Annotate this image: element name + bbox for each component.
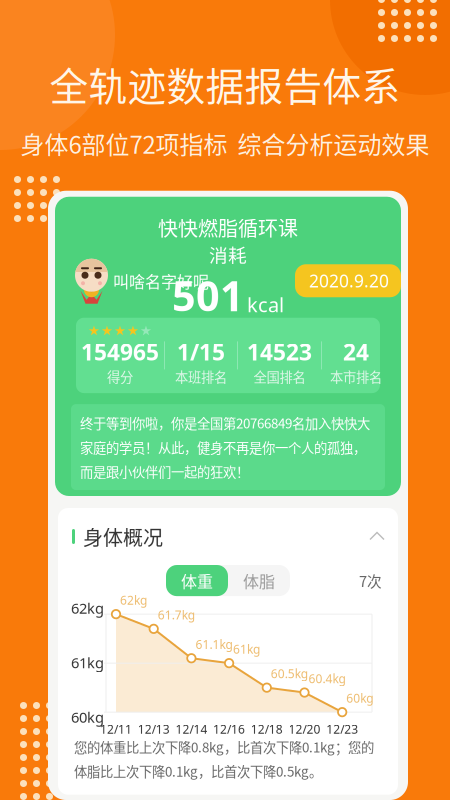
staticText: 身体6部位72项指标 综合分析运动效果 [20,126,429,161]
staticText: 501 [172,268,244,323]
staticText: 62kg [120,592,147,608]
staticText: 本班排名 [175,367,227,386]
button[interactable]: 体重 [166,565,228,596]
staticText: 154965 [81,337,159,367]
staticText: 24 [343,337,369,367]
staticText: 1/15 [177,337,225,367]
button[interactable]: Collapse section [370,532,384,540]
staticText: 12/23 [326,721,358,737]
staticText: 7次 [359,570,382,591]
staticText: 61kg [71,653,104,672]
staticText: 您的体重比上次下降0.8kg，比首次下降0.1kg；您的体脂比上次下降0.1kg… [74,737,374,781]
staticText: 60kg [346,690,373,706]
staticText: 得分 [107,367,133,386]
staticText: 12/18 [251,721,283,737]
staticText: 快快燃脂循环课 [158,213,298,242]
staticText: 60.4kg [308,671,345,686]
staticText: 61.7kg [158,607,195,623]
staticText: 62kg [71,598,104,618]
staticText: kcal [247,291,284,318]
staticText: ★ [88,323,100,338]
button[interactable]: 2020.9.20 [295,264,401,297]
staticText: 60kg [71,707,104,727]
staticText: 2020.9.20 [309,269,389,292]
staticText: 61.1kg [195,636,232,652]
staticText: ★ [114,323,126,338]
staticText: 终于等到你啦，你是全国第20766849名加入快快大家庭的学员！从此，健身不再是… [80,413,370,481]
staticText: 14523 [247,337,312,367]
staticText: 本市排名 [330,367,382,386]
staticText: 60.5kg [271,666,308,682]
staticText: 消耗 [209,241,247,268]
staticText: 叫啥名字好呢 [113,269,209,292]
staticText: 12/13 [138,721,170,737]
button[interactable]: 体脂 [228,565,290,596]
staticText: ★ [140,323,152,338]
staticText: 全轨迹数据报告体系 [49,56,400,112]
staticText: 12/14 [175,721,207,737]
staticText: ★ [127,323,139,338]
staticText: 12/11 [100,721,132,737]
staticText: 体脂 [243,569,275,592]
staticText: 身体概况 [83,522,163,551]
staticText: 全国排名 [253,367,305,386]
staticText: 61kg [233,641,260,657]
staticText: 12/16 [213,721,245,737]
staticText: ★ [101,323,113,338]
staticText: 体重 [181,569,213,592]
staticText: 12/20 [288,721,320,737]
